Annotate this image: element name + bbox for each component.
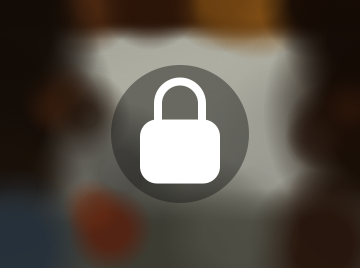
button[interactable]: Locked content bbox=[111, 65, 249, 203]
